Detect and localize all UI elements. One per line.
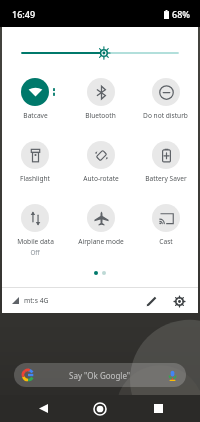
button[interactable]: Edit [142,292,160,310]
staticText: 68% [172,8,190,20]
button[interactable]: Auto-rotate [68,140,133,184]
button[interactable]: Airplane mode [68,203,133,247]
staticText: Battery Saver [145,174,187,183]
staticText: Batcave [23,111,48,120]
staticText: mt:s 4G [24,296,49,305]
button[interactable]: Settings [170,292,188,310]
button[interactable]: Bluetooth [68,77,133,121]
staticText: Auto-rotate [83,174,119,183]
button[interactable]: Mobile data [2,203,68,257]
button[interactable]: Cast [133,203,198,247]
staticText: Mobile data [17,237,54,246]
staticText: Cast [159,237,173,246]
button[interactable]: Recents [143,395,173,422]
button[interactable]: Batcave [2,77,68,121]
staticText: Flashlight [20,174,50,183]
button[interactable]: Say "Ok Google" [14,363,186,387]
staticText: Say "Ok Google" [69,370,131,381]
button[interactable]: Flashlight [2,140,68,184]
staticText: Off [30,248,40,256]
staticText: 16:49 [12,8,36,20]
button[interactable] [2,44,198,62]
button[interactable]: Battery Saver [133,140,198,184]
staticText: Bluetooth [85,111,116,120]
button[interactable]: Do not disturb [133,77,198,121]
button[interactable]: Home [85,395,115,422]
staticText: Do not disturb [143,111,188,120]
button[interactable]: Back [28,395,58,422]
staticText: Airplane mode [78,237,124,246]
